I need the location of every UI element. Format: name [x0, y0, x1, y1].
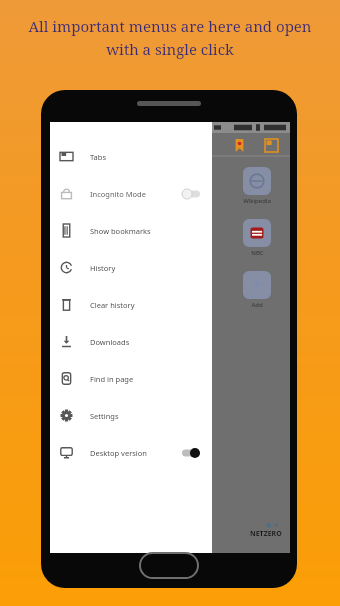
staticText: Downloads — [90, 337, 130, 347]
staticText: Settings — [90, 411, 119, 421]
button[interactable]: Downloads — [50, 323, 212, 360]
staticText: with a single click — [106, 39, 234, 59]
button[interactable]: Incognito Mode — [50, 175, 212, 212]
staticText: Desktop version — [90, 448, 147, 458]
button[interactable]: Tabs — [50, 138, 212, 175]
button[interactable]: Wikipedia — [234, 167, 280, 205]
staticText: Wikipedia — [243, 197, 271, 205]
staticText: NETZERO — [250, 529, 282, 539]
staticText: Clear history — [90, 300, 135, 310]
staticText: History — [90, 263, 116, 273]
button[interactable]: Show bookmarks — [50, 212, 212, 249]
staticText: Add — [251, 301, 263, 309]
button[interactable]: Desktop version — [50, 434, 212, 471]
button[interactable]: Settings — [50, 397, 212, 434]
staticText: NBC — [251, 249, 264, 257]
button[interactable]: Bookmarks — [228, 134, 250, 156]
button[interactable]: NBC — [234, 219, 280, 257]
staticText: Show bookmarks — [90, 226, 151, 236]
button[interactable]: Add — [234, 271, 280, 309]
button[interactable]: History — [50, 249, 212, 286]
button[interactable]: Tabs — [260, 134, 282, 156]
staticText: Tabs — [90, 152, 106, 162]
staticText: Incognito Mode — [90, 189, 146, 199]
button[interactable]: Clear history — [50, 286, 212, 323]
staticText: Find in page — [90, 374, 134, 384]
button[interactable]: Find in page — [50, 360, 212, 397]
staticText: All important menus are here and open — [28, 16, 312, 36]
